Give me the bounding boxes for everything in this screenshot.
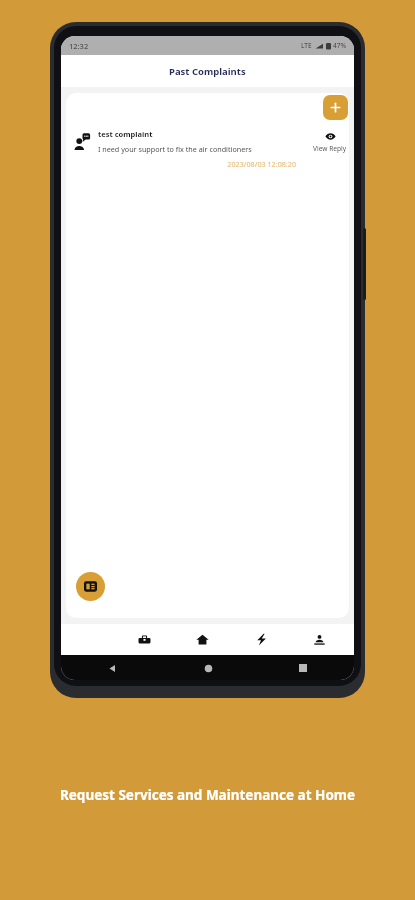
button[interactable]: Services — [120, 624, 168, 655]
button[interactable]: Complaints list — [76, 572, 105, 601]
staticText: test complaint — [98, 129, 153, 139]
button[interactable]: test complaint — [61, 129, 354, 169]
staticText: 2023/08/03 12:08:20 — [61, 159, 296, 169]
staticText: LTE — [301, 41, 312, 50]
staticText: 47% — [333, 41, 346, 50]
staticText: View Reply — [313, 144, 347, 153]
staticText: 12:32 — [69, 41, 89, 51]
staticText: Request Services and Maintenance at Home — [0, 786, 415, 804]
button[interactable]: Home — [178, 624, 226, 655]
staticText: I need your support to fix the air condi… — [98, 144, 252, 154]
button[interactable]: Add complaint — [323, 95, 348, 120]
button[interactable]: Recents — [294, 659, 312, 677]
button[interactable]: View Reply — [312, 131, 348, 153]
button[interactable]: Emergency — [237, 624, 285, 655]
button[interactable]: Home — [199, 659, 217, 677]
staticText: Past Complaints — [169, 65, 246, 78]
button[interactable]: Back — [103, 659, 121, 677]
button[interactable]: Profile — [295, 624, 343, 655]
